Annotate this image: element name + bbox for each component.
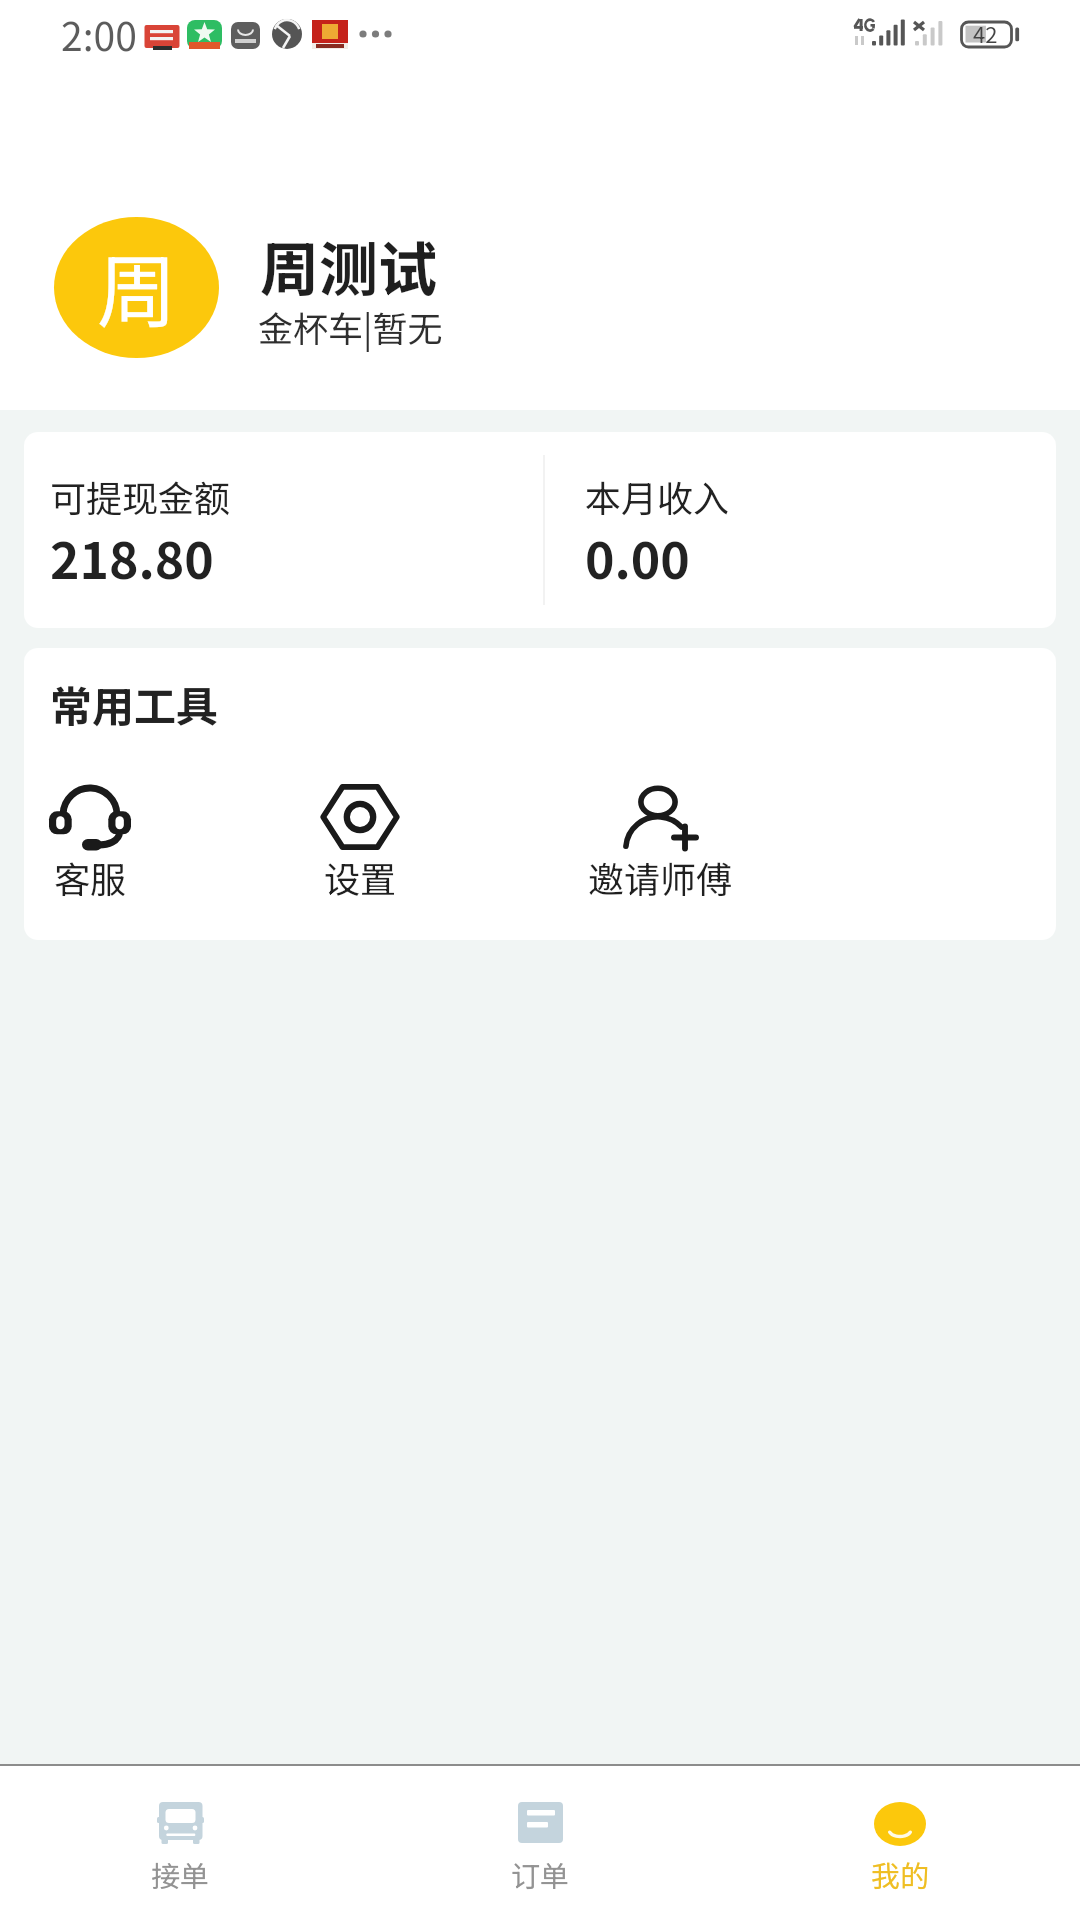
button[interactable]: Orders xyxy=(360,1766,720,1920)
staticText: 0.00 xyxy=(585,521,690,593)
button[interactable]: 设置 xyxy=(260,784,460,903)
staticText: 订单 xyxy=(511,1853,570,1895)
staticText: 218.80 xyxy=(50,521,214,593)
staticText: 周测试 xyxy=(260,223,438,308)
staticText: 本月收入 xyxy=(585,470,730,522)
button[interactable]: 可提现金额 xyxy=(24,432,543,628)
button[interactable]: Take orders xyxy=(0,1766,360,1920)
button[interactable]: 客服 xyxy=(24,784,190,903)
staticText: 42 xyxy=(973,17,998,49)
button[interactable]: 周 xyxy=(0,180,1080,400)
staticText: 周 xyxy=(97,228,177,344)
staticText: 我的 xyxy=(871,1853,930,1895)
button[interactable]: Mine xyxy=(720,1766,1080,1920)
staticText: 邀请师傅 xyxy=(588,851,733,903)
button[interactable]: 邀请师傅 xyxy=(560,784,760,903)
staticText: 设置 xyxy=(324,851,397,903)
staticText: 接单 xyxy=(151,1853,210,1895)
staticText: 常用工具 xyxy=(50,673,219,734)
staticText: 2:00 xyxy=(61,6,137,62)
staticText: 金杯车|暂无 xyxy=(258,301,443,352)
staticText: 可提现金额 xyxy=(50,470,231,522)
staticText: 客服 xyxy=(54,851,127,903)
button[interactable]: 本月收入 xyxy=(545,432,1056,628)
